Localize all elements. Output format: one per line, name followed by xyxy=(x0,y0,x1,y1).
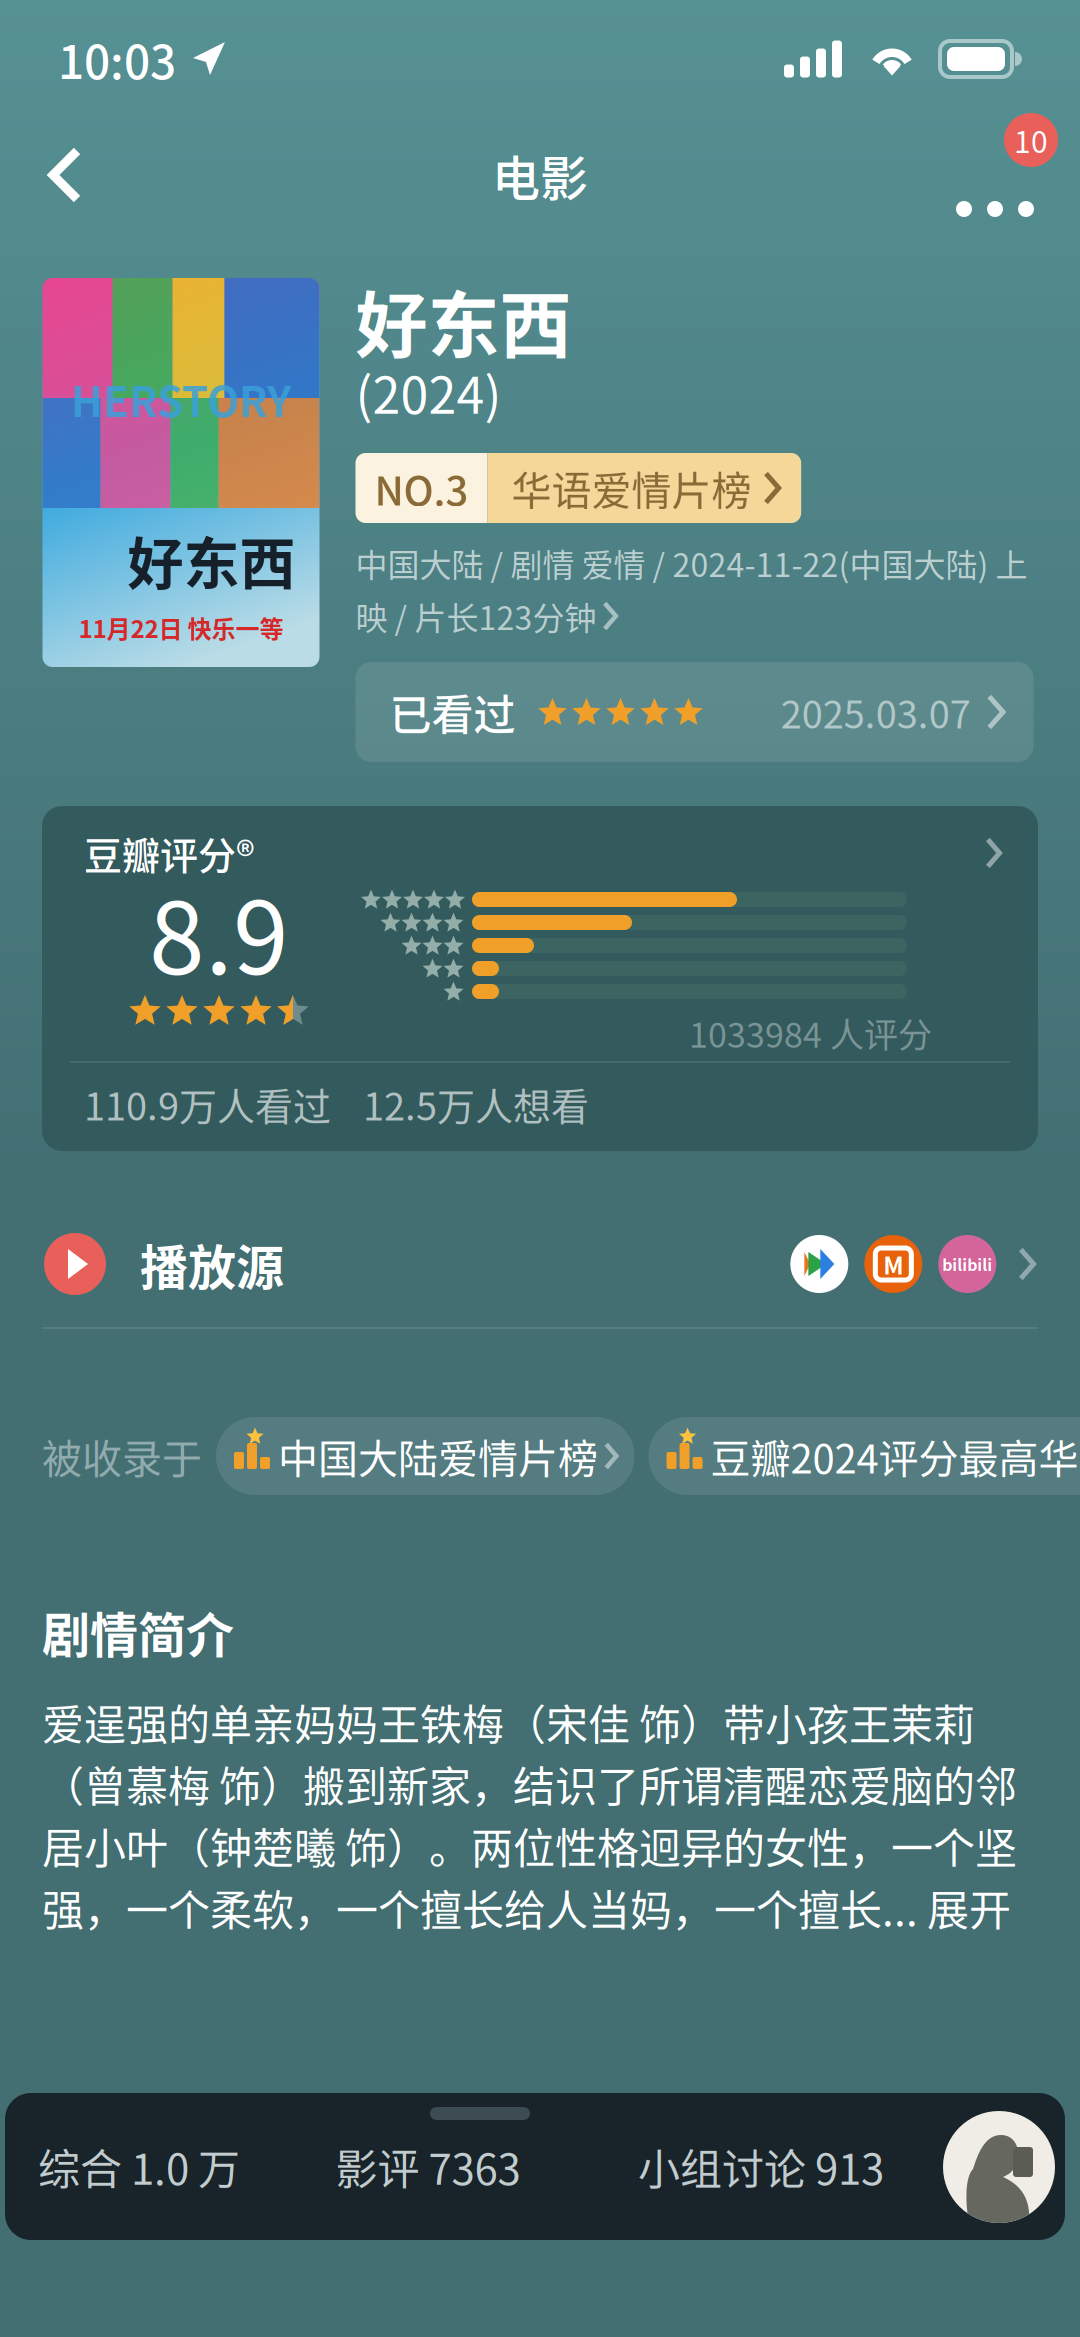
staticText: 110.9万人看过 xyxy=(84,1076,331,1131)
staticText: 豆瓣2024评分最高华 xyxy=(711,1427,1079,1485)
staticText: 剧情简介 xyxy=(42,1597,234,1666)
staticText: 2025.03.07 xyxy=(781,684,971,739)
staticText: M xyxy=(883,1247,903,1281)
staticText: 8.9 xyxy=(149,859,289,1003)
button[interactable]: 播放源 xyxy=(0,1201,1080,1327)
button[interactable]: More options xyxy=(940,111,1058,239)
staticText: HERSTORY xyxy=(71,368,291,429)
staticText: 爱逞强的单亲妈妈王铁梅（宋佳 饰）带小孩王茉莉（曾慕梅 饰）搬到新家，结识了所谓… xyxy=(42,1691,1017,1938)
staticText: 映 / 片长123分钟 xyxy=(355,593,596,639)
staticText: 1033984 人评分 xyxy=(689,1008,932,1058)
staticText: 影评 7363 xyxy=(335,2136,520,2197)
staticText: 豆瓣评分® xyxy=(84,825,255,880)
staticText: 被收录于 xyxy=(42,1427,202,1485)
button[interactable]: 综合 1.0 万 xyxy=(5,2093,253,2240)
staticText: 播放源 xyxy=(140,1229,284,1299)
button[interactable]: 中国大陆爱情片榜 xyxy=(216,1417,635,1495)
staticText: 10 xyxy=(1014,118,1048,162)
staticText: 10:03 xyxy=(58,26,176,92)
staticText: 中国大陆 / 剧情 爱情 / 2024-11-22(中国大陆) 上 xyxy=(355,540,1027,586)
staticText: (2024) xyxy=(355,356,501,428)
button[interactable]: 豆瓣评分® xyxy=(42,806,1038,1151)
staticText: 中国大陆爱情片榜 xyxy=(278,1427,598,1485)
staticText: 电影 xyxy=(492,140,588,210)
button[interactable]: 小组讨论 913 xyxy=(543,2093,901,2240)
staticText: 11月22日 快乐一等 xyxy=(78,610,283,645)
button[interactable]: 已看过 xyxy=(355,662,1033,762)
staticText: 小组讨论 913 xyxy=(638,2136,884,2197)
button[interactable]: 豆瓣2024评分最高华 xyxy=(649,1417,1080,1495)
staticText: 综合 1.0 万 xyxy=(38,2136,240,2197)
button[interactable]: Profile xyxy=(943,2111,1055,2223)
staticText: 已看过 xyxy=(389,682,515,742)
staticText: 12.5万人想看 xyxy=(363,1076,589,1131)
button[interactable]: Back xyxy=(22,122,108,228)
staticText: 好东西 xyxy=(355,268,571,372)
staticText: 华语爱情片榜 xyxy=(511,459,751,517)
staticText: NO.3 xyxy=(374,459,468,517)
staticText: bilibili xyxy=(942,1252,992,1276)
button[interactable]: 影评 7363 xyxy=(253,2093,543,2240)
staticText: 好东西 xyxy=(127,519,295,600)
button[interactable]: NO.3 xyxy=(355,453,801,523)
